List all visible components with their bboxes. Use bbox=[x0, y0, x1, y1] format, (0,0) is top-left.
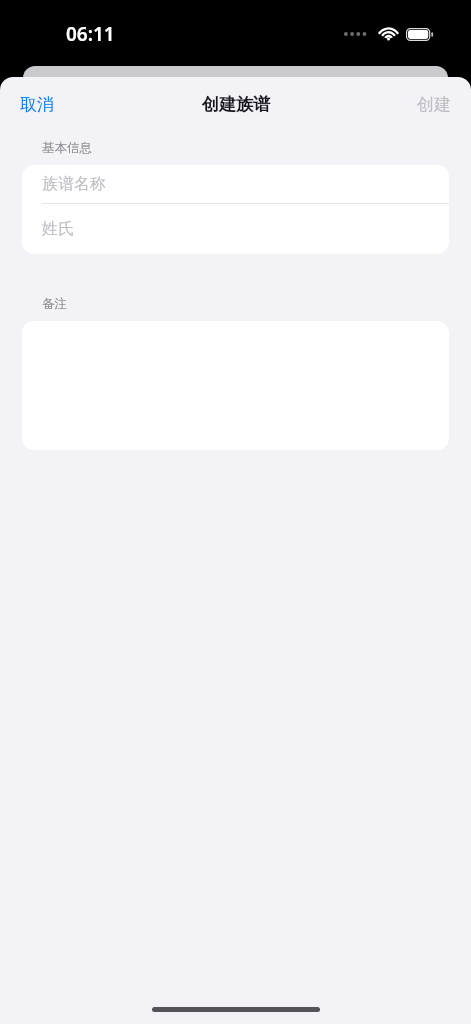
staticText: 族谱名称 bbox=[42, 174, 106, 194]
staticText: 创建 bbox=[417, 94, 451, 115]
button[interactable]: 创建 bbox=[397, 84, 471, 125]
staticText: 取消 bbox=[20, 94, 54, 115]
button[interactable]: 取消 bbox=[0, 84, 74, 125]
staticText: 备注 bbox=[42, 296, 67, 312]
staticText: 基本信息 bbox=[42, 140, 92, 156]
staticText: 姓氏 bbox=[42, 219, 74, 239]
button[interactable]: 族谱名称 bbox=[22, 165, 449, 203]
staticText: 创建族谱 bbox=[202, 94, 270, 115]
staticText: 06:11 bbox=[66, 21, 115, 47]
button[interactable]: 姓氏 bbox=[22, 204, 449, 254]
